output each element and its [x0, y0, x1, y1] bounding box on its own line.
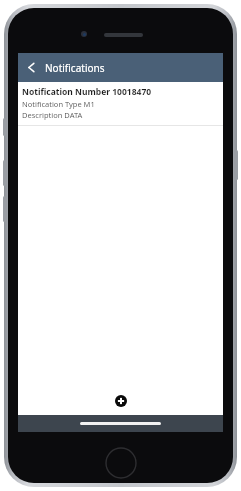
- button[interactable]: Notification Number 10018470: [18, 82, 223, 125]
- button[interactable]: Home: [105, 447, 137, 479]
- button[interactable]: Add: [111, 391, 131, 411]
- staticText: Notification Number 10018470: [22, 86, 152, 98]
- staticText: Notifications: [45, 61, 105, 75]
- staticText: Notification Type M1: [22, 99, 95, 109]
- staticText: Description DATA: [22, 110, 83, 120]
- button[interactable]: Back: [18, 53, 45, 82]
